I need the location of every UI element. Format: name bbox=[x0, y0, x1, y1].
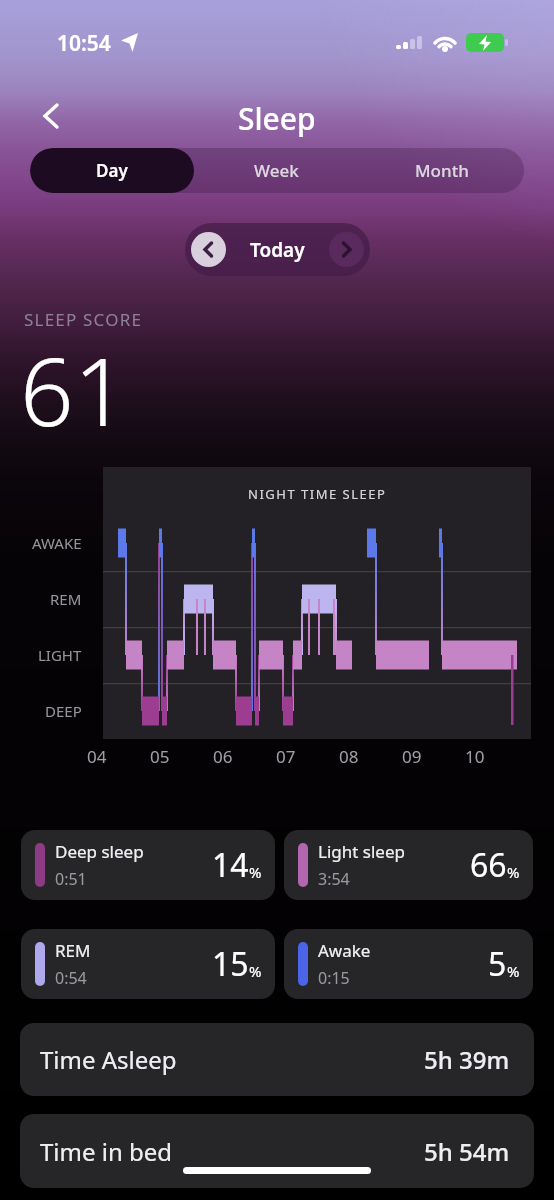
button[interactable]: Light sleep bbox=[284, 830, 533, 900]
staticText: Awake bbox=[318, 939, 371, 962]
staticText: 0:15 bbox=[318, 967, 350, 989]
staticText: % bbox=[507, 961, 520, 981]
staticText: Deep sleep bbox=[55, 840, 144, 863]
button[interactable]: REM bbox=[21, 929, 275, 999]
staticText: Time in bed bbox=[40, 1135, 173, 1168]
staticText: 06 bbox=[213, 745, 233, 767]
staticText: 15 bbox=[212, 942, 249, 986]
staticText: 10 bbox=[465, 745, 485, 767]
staticText: AWAKE bbox=[32, 533, 82, 553]
staticText: 3:54 bbox=[318, 868, 350, 890]
staticText: 07 bbox=[276, 745, 296, 767]
staticText: Sleep bbox=[238, 98, 316, 139]
button[interactable] bbox=[30, 96, 70, 136]
staticText: SLEEP SCORE bbox=[24, 308, 143, 331]
staticText: 5 bbox=[488, 942, 507, 986]
staticText: 08 bbox=[339, 745, 359, 767]
staticText: Today bbox=[250, 237, 305, 263]
staticText: 05 bbox=[150, 745, 170, 767]
button[interactable] bbox=[191, 232, 226, 267]
button[interactable]: Week bbox=[194, 148, 359, 193]
staticText: 5h 39m bbox=[424, 1043, 510, 1076]
staticText: 10:54 bbox=[57, 29, 111, 58]
staticText: 14 bbox=[212, 843, 249, 887]
button[interactable]: Awake bbox=[284, 929, 533, 999]
staticText: Day bbox=[96, 159, 128, 182]
staticText: NIGHT TIME SLEEP bbox=[248, 485, 387, 503]
button[interactable]: Month bbox=[359, 148, 524, 193]
staticText: 0:51 bbox=[55, 868, 87, 890]
staticText: REM bbox=[50, 589, 82, 609]
staticText: 04 bbox=[87, 745, 107, 767]
staticText: LIGHT bbox=[38, 645, 82, 665]
button[interactable]: Deep sleep bbox=[21, 830, 275, 900]
button[interactable]: Time Asleep bbox=[20, 1023, 534, 1096]
staticText: REM bbox=[55, 939, 91, 962]
staticText: 61 bbox=[20, 326, 128, 454]
staticText: Time Asleep bbox=[40, 1043, 177, 1076]
staticText: Week bbox=[254, 159, 299, 182]
staticText: 0:54 bbox=[55, 967, 87, 989]
button[interactable]: Day bbox=[30, 148, 194, 193]
staticText: Month bbox=[415, 159, 469, 182]
staticText: 66 bbox=[470, 843, 507, 887]
staticText: 09 bbox=[402, 745, 422, 767]
staticText: Light sleep bbox=[318, 840, 405, 863]
staticText: % bbox=[507, 862, 520, 882]
staticText: DEEP bbox=[45, 701, 82, 721]
staticText: % bbox=[249, 961, 262, 981]
staticText: 5h 54m bbox=[424, 1135, 510, 1168]
button[interactable] bbox=[329, 232, 364, 267]
staticText: % bbox=[249, 862, 262, 882]
button[interactable]: Time in bed bbox=[20, 1114, 534, 1188]
